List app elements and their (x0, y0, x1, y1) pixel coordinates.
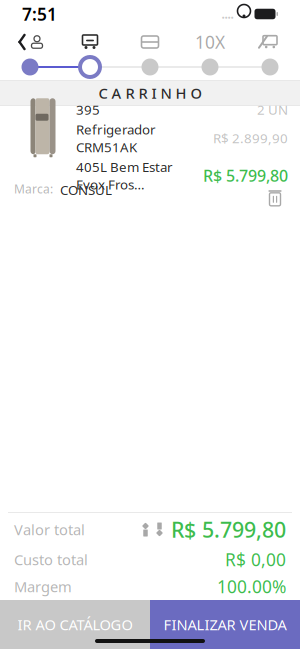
staticText: 7:51 (22, 2, 57, 25)
staticText: R$ 5.799,80 (171, 515, 286, 544)
button[interactable]: Pagamento (120, 29, 180, 55)
staticText: 405L Bem Estar Evox Fros… (76, 158, 173, 193)
button[interactable]: Finalizar (240, 29, 300, 55)
staticText: 100.00% (217, 575, 286, 598)
staticText: Valor total (14, 520, 85, 539)
staticText: Margem (14, 577, 72, 596)
button[interactable]: IR AO CATÁLOGO (0, 600, 150, 649)
button[interactable]: FINALIZAR VENDA (150, 600, 300, 649)
staticText: 10X (195, 30, 225, 53)
button[interactable]: 10X (180, 29, 240, 55)
staticText: Custo total (14, 550, 88, 569)
staticText: R$ 2.899,90 (213, 129, 288, 147)
staticText: .... (221, 6, 233, 22)
button[interactable]: Carrinho (60, 29, 120, 55)
button[interactable]: Remover item (258, 181, 292, 215)
staticText: Refrigerador CRM51AK (76, 120, 156, 156)
staticText: FINALIZAR VENDA (163, 615, 286, 634)
staticText: IR AO CATÁLOGO (17, 615, 132, 634)
staticText: CONSUL (60, 181, 112, 199)
staticText: Marca: (14, 181, 53, 197)
staticText: R$ 5.799,80 (203, 165, 288, 186)
button[interactable]: 395 (0, 106, 300, 176)
button[interactable]: Voltar (0, 29, 60, 55)
staticText: R$ 0,00 (225, 548, 286, 571)
staticText: 2 UN (257, 101, 288, 118)
staticText: C A R R I N H O (98, 83, 201, 103)
staticText: 395 (76, 101, 100, 118)
